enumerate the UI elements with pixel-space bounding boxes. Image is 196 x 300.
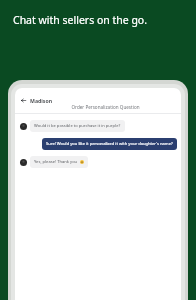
button[interactable]: Sure! Would you like it personalized it … <box>15 137 181 151</box>
staticText: Order Personalization Question <box>71 104 140 110</box>
staticText: Yes, please! Thank you <box>34 159 78 165</box>
staticText: Sure! Would you like it personalized it … <box>46 141 173 147</box>
button[interactable]: Would it be possible to purchase it in p… <box>15 119 181 133</box>
button[interactable]: Back to Madison conversation <box>19 94 55 107</box>
button[interactable]: Yes, please! Thank you <box>15 155 181 169</box>
staticText: Would it be possible to purchase it in p… <box>34 123 121 129</box>
staticText: Chat with sellers on the go. <box>13 13 148 27</box>
staticText: Madison <box>30 97 53 104</box>
